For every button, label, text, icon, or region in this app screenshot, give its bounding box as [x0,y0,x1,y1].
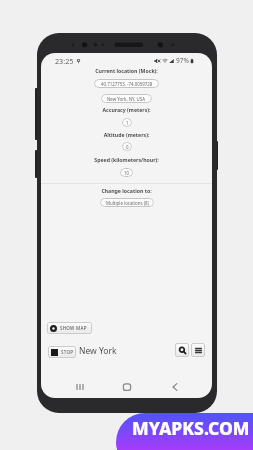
staticText: Accuracy (meters): [41,106,212,113]
button[interactable]: STOP [48,346,76,358]
button[interactable]: 40.7127753, -74.0059728 [94,79,159,88]
staticText: New York [79,345,117,357]
button[interactable]: 0 [122,142,132,151]
staticText: MYAPKS.COM [132,416,250,440]
staticText: New York, NY, USA [107,96,146,102]
button[interactable]: Recents [71,378,89,396]
button[interactable]: Menu [191,343,205,357]
staticText: Speed (kilometers/hour): [41,156,212,163]
staticText: 97% [176,56,190,65]
staticText: 40.7127753, -74.0059728 [101,81,153,87]
button[interactable]: New York, NY, USA [101,94,152,103]
staticText: SHOW MAP [60,325,87,331]
button[interactable]: 10 [120,168,133,177]
staticText: Current location (Mock): [41,67,212,74]
staticText: Change location to: [41,187,212,194]
button[interactable]: Back [166,378,184,396]
staticText: Multiple locations (8) [106,200,149,206]
staticText: Altitude (meters): [41,131,212,138]
staticText: 1 [126,120,129,126]
button[interactable]: Home [118,378,136,396]
staticText: 10 [124,170,130,176]
button[interactable]: 1 [122,118,132,127]
button[interactable]: SHOW MAP [47,322,92,334]
staticText: STOP [61,349,73,355]
staticText: 0 [126,144,129,150]
button[interactable]: Multiple locations (8) [100,198,154,207]
button[interactable]: Search [175,343,189,357]
staticText: 23:25 [55,56,74,66]
